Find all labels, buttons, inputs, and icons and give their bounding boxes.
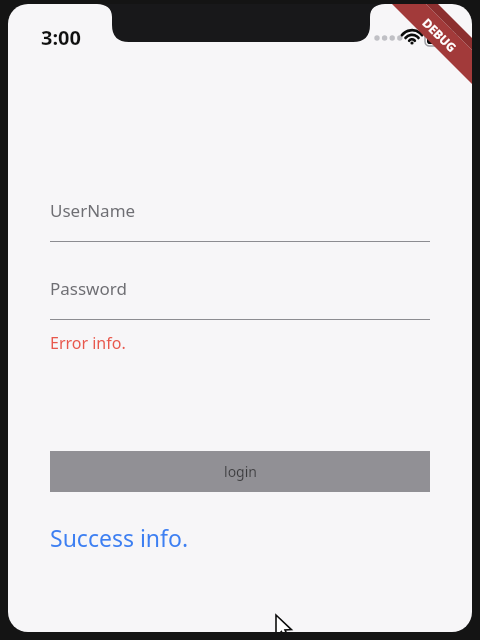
staticText: UserName [50,199,136,222]
button[interactable]: login [50,451,430,492]
staticText: Success info. [50,522,189,553]
staticText: Password [50,277,127,300]
button[interactable]: UserName input field [50,192,430,242]
staticText: Error info. [50,332,126,354]
staticText: 3:00 [41,24,81,51]
staticText: DEBUG [419,14,460,55]
staticText: login [224,462,257,481]
button[interactable]: Password input field [50,270,430,320]
